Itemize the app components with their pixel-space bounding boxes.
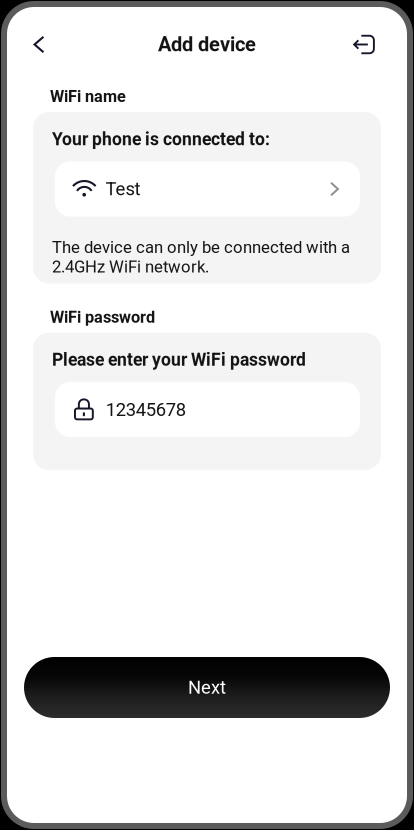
staticText: WiFi name: [50, 87, 126, 106]
button[interactable]: Log out: [342, 20, 386, 68]
staticText: Your phone is connected to:: [52, 129, 270, 150]
staticText: Add device: [158, 33, 256, 56]
button[interactable]: Test: [55, 161, 360, 216]
staticText: The device can only be connected with a …: [52, 237, 350, 277]
staticText: 12345678: [106, 399, 186, 420]
button[interactable]: 12345678: [55, 382, 360, 437]
staticText: WiFi password: [50, 308, 155, 327]
staticText: Next: [188, 677, 226, 698]
staticText: Please enter your WiFi password: [52, 350, 306, 370]
button[interactable]: Back: [17, 20, 61, 68]
button[interactable]: Next: [24, 657, 390, 718]
staticText: Test: [106, 178, 141, 200]
